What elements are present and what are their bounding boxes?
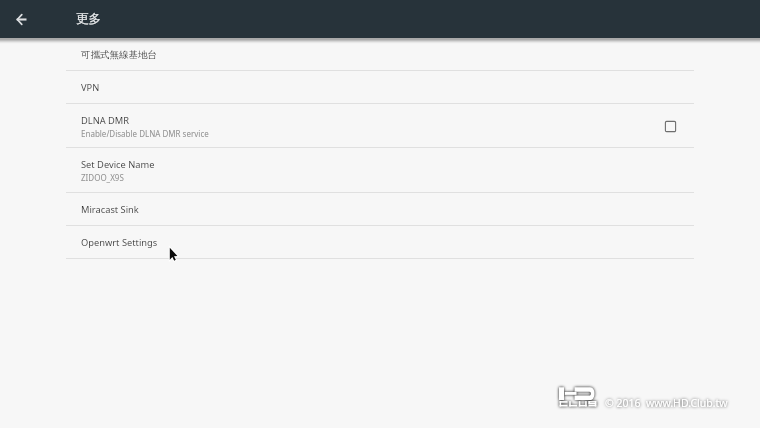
staticText: Openwrt Settings xyxy=(81,236,158,249)
staticText: DLNA DMR xyxy=(81,114,130,127)
button[interactable]: Miracast Sink xyxy=(0,193,760,226)
button[interactable]: 可攜式無線基地台 xyxy=(0,38,760,71)
button[interactable]: Toggle DLNA DMR xyxy=(659,115,682,138)
staticText: © 2016 www.HD.Club.tw xyxy=(605,396,728,410)
button[interactable]: Openwrt Settings xyxy=(0,226,760,259)
staticText: 更多 xyxy=(76,11,101,27)
staticText: Enable/Disable DLNA DMR service xyxy=(81,128,209,139)
button[interactable]: VPN xyxy=(0,71,760,104)
staticText: Miracast Sink xyxy=(81,203,139,216)
staticText: VPN xyxy=(81,81,100,94)
button[interactable]: Back xyxy=(5,3,38,36)
staticText: ZIDOO_X9S xyxy=(81,172,124,183)
button[interactable]: Set Device Name xyxy=(0,148,760,193)
staticText: 可攜式無線基地台 xyxy=(81,49,157,61)
staticText: Set Device Name xyxy=(81,158,155,171)
staticText: © 2016 www.HD.Club.tw xyxy=(605,396,728,410)
button[interactable]: DLNA DMR xyxy=(0,104,760,148)
